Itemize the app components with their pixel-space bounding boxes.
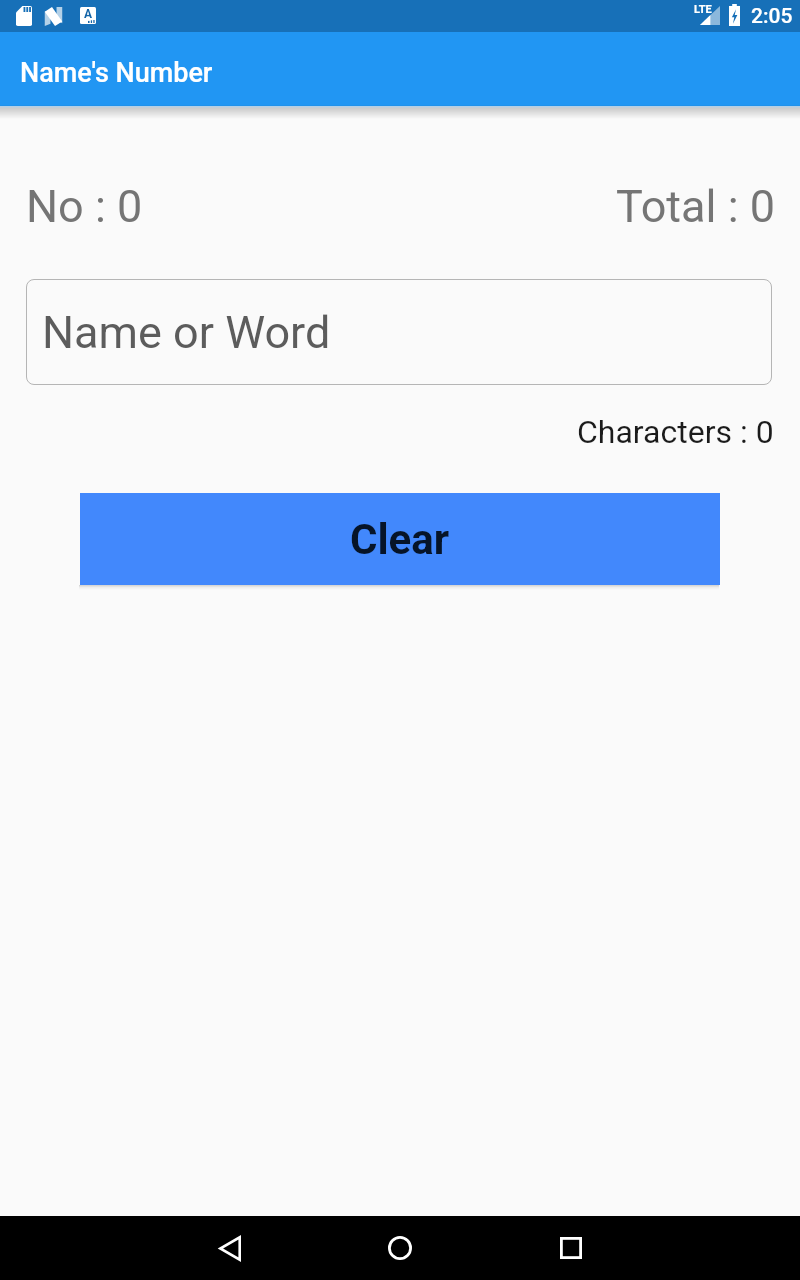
staticText: Name's Number [20,57,213,89]
staticText: A [84,7,93,21]
staticText: Clear [350,515,450,564]
staticText: No : 0 [26,180,143,233]
button[interactable]: Back [170,1216,290,1280]
staticText: Characters : 0 [577,413,774,451]
button[interactable]: Clear [80,493,720,585]
button[interactable]: Name or Word [26,279,772,385]
staticText: 2:05 [751,4,793,29]
staticText: Total : 0 [616,180,775,233]
staticText: Name or Word [42,306,331,359]
button[interactable]: Recent apps [511,1216,631,1280]
staticText: LTE [694,3,712,16]
button[interactable]: Home [340,1216,460,1280]
